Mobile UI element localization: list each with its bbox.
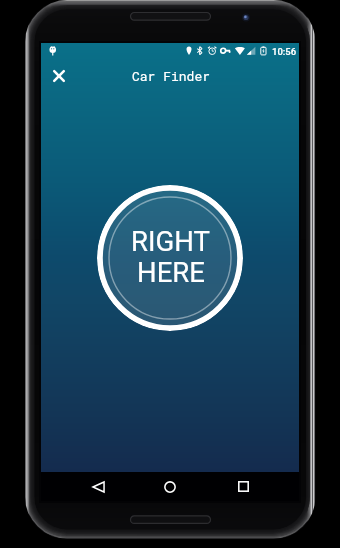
- button[interactable]: Home: [143, 472, 197, 501]
- button[interactable]: Close: [42, 59, 76, 92]
- staticText: 10:56: [272, 46, 297, 57]
- button[interactable]: Recent apps: [216, 472, 270, 501]
- staticText: HERE: [137, 256, 205, 288]
- button[interactable]: RIGHT: [97, 185, 243, 331]
- button[interactable]: Back: [71, 472, 125, 501]
- staticText: RIGHT: [131, 225, 210, 257]
- staticText: Car Finder: [132, 67, 211, 84]
